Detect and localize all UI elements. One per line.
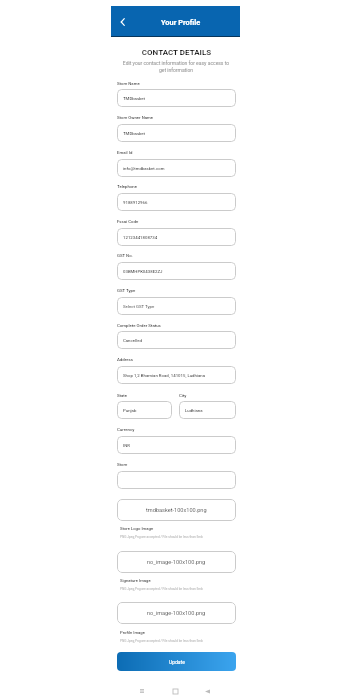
staticText: Edit your contact information for easy a… [120, 60, 232, 73]
staticText: Update [169, 659, 185, 665]
button[interactable]: no_image-100x100.png [117, 602, 236, 624]
button[interactable]: Punjab [117, 401, 172, 419]
staticText: no_image-100x100.png [147, 559, 206, 566]
staticText: Ludhiana [185, 408, 203, 413]
staticText: Select GST Type [123, 304, 155, 309]
button[interactable]: Shop 1,2 Bhamian Road, 141015, Ludhiana [117, 366, 236, 384]
staticText: GST No. [117, 253, 133, 258]
button[interactable]: tmdbasket-100x100.png [117, 499, 236, 521]
staticText: Punjab [123, 408, 137, 413]
staticText: INR [123, 443, 130, 448]
staticText: info@tmdbasket.com [123, 166, 165, 171]
staticText: Email Id [117, 150, 133, 155]
button[interactable]: TMDbasket [117, 89, 236, 107]
staticText: Telephone [117, 184, 138, 189]
staticText: PNG Jpeg,Png are accepted / File should … [120, 639, 203, 643]
button[interactable]: Select GST Type [117, 297, 236, 315]
button[interactable]: info@tmdbasket.com [117, 159, 236, 177]
button[interactable]: Home [168, 684, 182, 698]
staticText: Your Profile [161, 18, 201, 27]
staticText: Currency [117, 427, 135, 432]
button[interactable]: 12123441808734 [117, 228, 236, 246]
staticText: State [117, 393, 128, 398]
staticText: tmdbasket-100x100.png [146, 507, 207, 514]
staticText: CONTACT DETAILS [117, 48, 236, 57]
staticText: GST Type [117, 288, 136, 293]
staticText: Signature Image [120, 578, 151, 583]
button[interactable] [117, 471, 236, 489]
button[interactable]: INR [117, 436, 236, 454]
button[interactable]: no_image-100x100.png [117, 551, 236, 573]
staticText: Store Owner Name [117, 115, 154, 120]
staticText: Profile Image [120, 630, 145, 635]
staticText: 03BMHPK0438E2ZJ [123, 269, 163, 274]
button[interactable]: Update [117, 652, 236, 671]
staticText: Address [117, 357, 133, 362]
button[interactable]: TMDbasket [117, 124, 236, 142]
staticText: no_image-100x100.png [147, 610, 206, 617]
button[interactable]: 9188912966 [117, 193, 236, 211]
button[interactable]: 03BMHPK0438E2ZJ [117, 262, 236, 280]
staticText: Store [117, 462, 128, 467]
button[interactable]: Back [200, 684, 214, 698]
staticText: TMDbasket [123, 96, 146, 101]
staticText: Complete Order Status [117, 323, 161, 328]
button[interactable]: Recent apps [135, 684, 149, 698]
staticText: Cancelled [123, 338, 142, 343]
staticText: Shop 1,2 Bhamian Road, 141015, Ludhiana [123, 373, 206, 378]
button[interactable]: Cancelled [117, 331, 236, 349]
staticText: 12123441808734 [123, 235, 158, 240]
staticText: Store Name [117, 81, 140, 86]
staticText: PNG Jpeg,Png are accepted / File should … [120, 535, 203, 539]
staticText: Fssai Code [117, 219, 139, 224]
staticText: 9188912966 [123, 200, 148, 205]
button[interactable]: Back [115, 14, 131, 30]
staticText: PNG Jpeg,Png are accepted / File should … [120, 587, 203, 591]
staticText: TMDbasket [123, 131, 146, 136]
staticText: Store Logo Image [120, 526, 154, 531]
staticText: City [179, 393, 187, 398]
button[interactable]: Ludhiana [179, 401, 236, 419]
